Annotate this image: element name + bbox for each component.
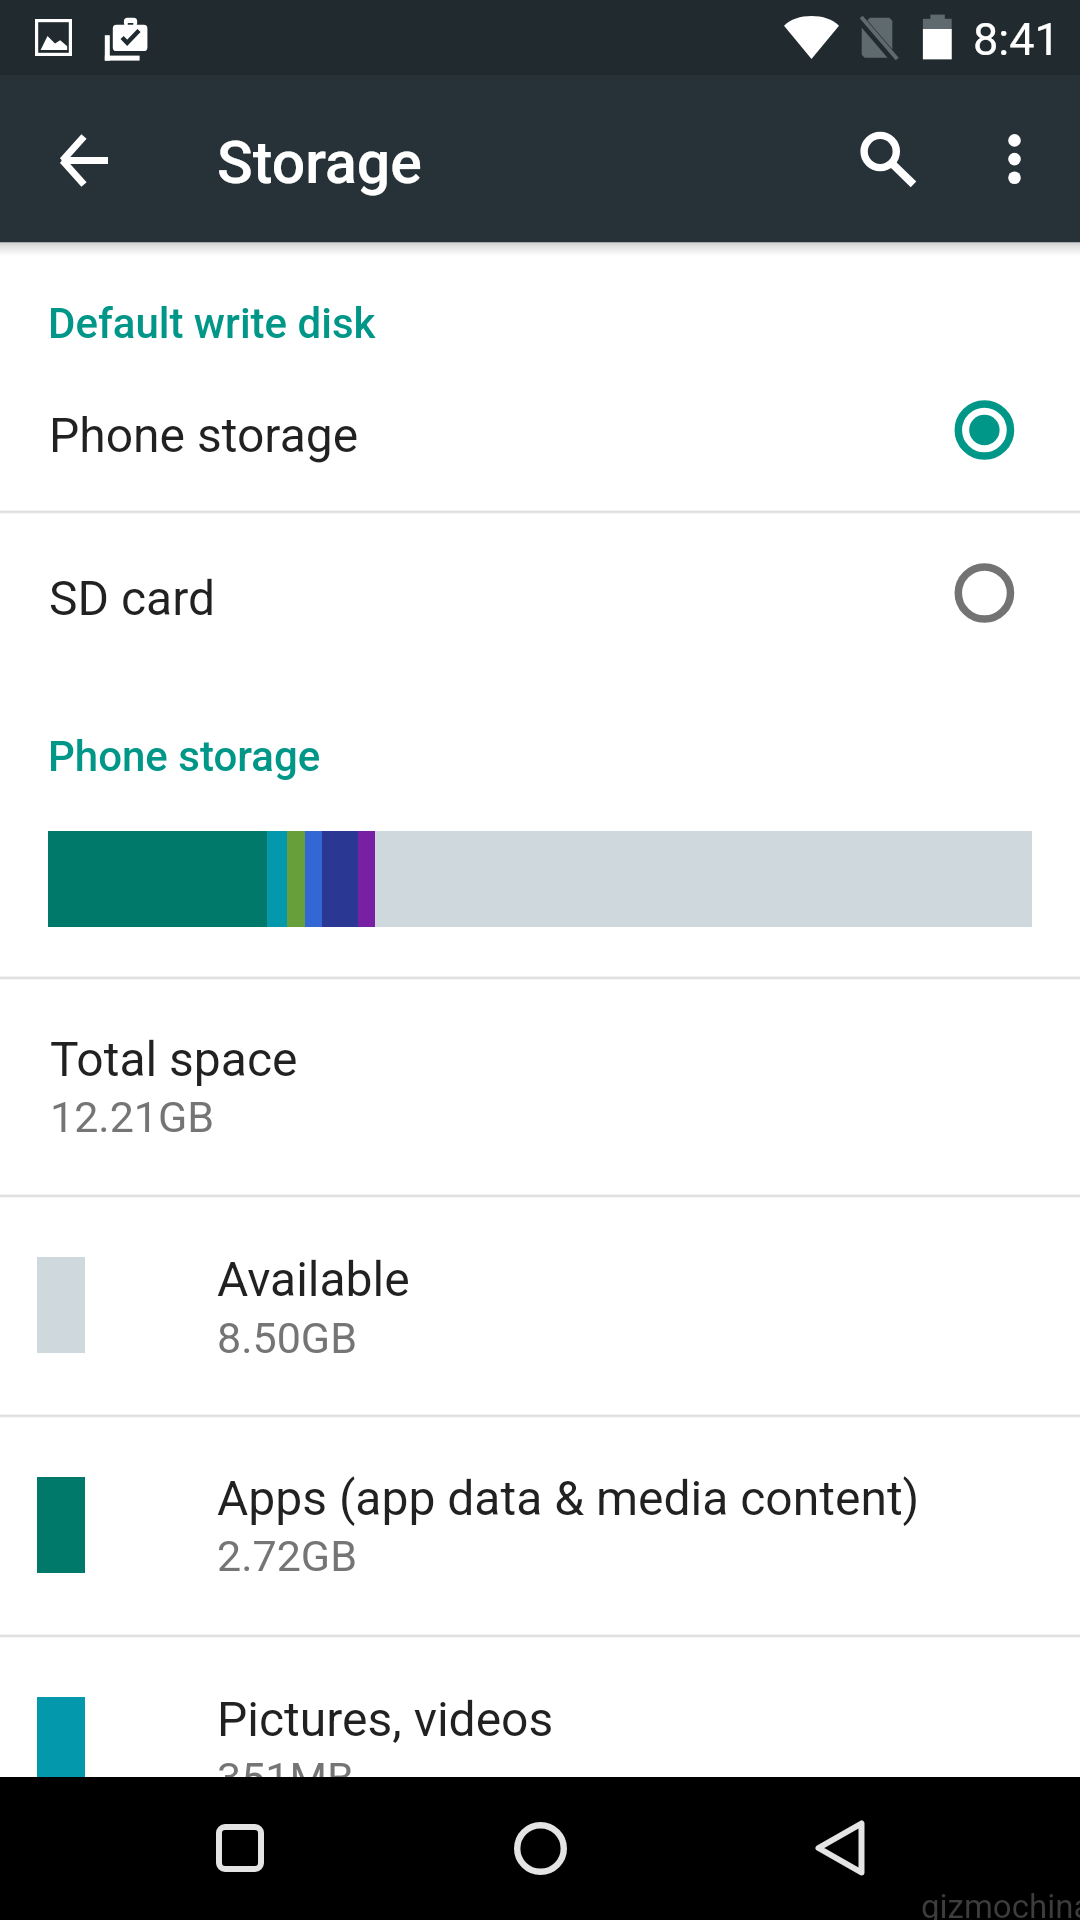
button[interactable]: Recent apps bbox=[190, 1800, 290, 1900]
staticText: Default write disk bbox=[48, 299, 376, 348]
button[interactable]: Phone storage bbox=[0, 675, 1080, 800]
button[interactable]: Phone storage bbox=[0, 348, 1080, 511]
button[interactable]: Default write disk bbox=[0, 242, 1080, 348]
button[interactable]: Total space bbox=[0, 977, 1080, 1195]
button[interactable]: SD card bbox=[0, 511, 1080, 675]
button[interactable]: Navigate up bbox=[44, 121, 124, 201]
staticText: Storage bbox=[217, 128, 422, 197]
staticText: 2.72GB bbox=[217, 1531, 357, 1581]
staticText: Phone storage bbox=[48, 732, 321, 781]
staticText: 351MB bbox=[217, 1753, 354, 1803]
staticText: 8.50GB bbox=[217, 1313, 357, 1363]
staticText: Phone storage bbox=[49, 407, 359, 463]
staticText: Pictures, videos bbox=[217, 1691, 554, 1747]
staticText: 8:41 bbox=[973, 13, 1060, 66]
button[interactable]: Back bbox=[790, 1798, 890, 1898]
button[interactable]: More options bbox=[970, 109, 1058, 197]
staticText: gizmochina bbox=[921, 1887, 1080, 1920]
staticText: Apps (app data & media content) bbox=[217, 1470, 920, 1526]
staticText: SD card bbox=[49, 570, 216, 626]
button[interactable]: Available bbox=[0, 1195, 1080, 1415]
button[interactable]: Pictures, videos bbox=[0, 1635, 1080, 1855]
staticText: 12.21GB bbox=[50, 1092, 215, 1142]
button[interactable]: Apps (app data & media content) bbox=[0, 1415, 1080, 1635]
staticText: Total space bbox=[50, 1031, 298, 1087]
staticText: Available bbox=[217, 1251, 410, 1307]
button[interactable]: Search bbox=[836, 107, 924, 195]
button[interactable]: Home bbox=[490, 1798, 590, 1898]
